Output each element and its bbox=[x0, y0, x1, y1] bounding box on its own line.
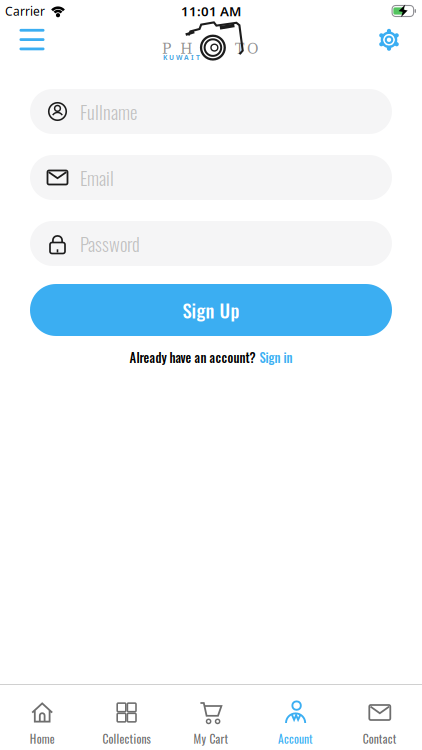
button[interactable]: Already have an account? bbox=[129, 348, 292, 367]
button[interactable]: Home bbox=[0, 701, 84, 747]
staticText: Sign Up bbox=[182, 296, 239, 324]
staticText: O bbox=[247, 41, 258, 57]
staticText: P bbox=[162, 41, 171, 57]
button[interactable]: My Cart bbox=[169, 701, 253, 747]
staticText: Already have an account? bbox=[129, 348, 255, 367]
staticText: H bbox=[180, 41, 192, 57]
staticText: Home bbox=[30, 730, 55, 747]
staticText: Contact bbox=[363, 730, 397, 747]
staticText: 11:01 AM bbox=[181, 2, 241, 20]
staticText: Sign in bbox=[259, 348, 292, 367]
staticText: Account bbox=[278, 730, 313, 747]
button[interactable]: Contact bbox=[338, 701, 422, 747]
staticText: Collections bbox=[103, 730, 151, 747]
staticText: Password bbox=[80, 230, 140, 257]
button[interactable]: Password bbox=[30, 221, 392, 266]
button[interactable]: Sign Up bbox=[30, 284, 392, 336]
button[interactable]: Menu bbox=[19, 29, 44, 50]
staticText: K U W A I T bbox=[163, 53, 200, 62]
button[interactable]: Account bbox=[253, 701, 338, 747]
staticText: Email bbox=[80, 164, 114, 191]
staticText: Carrier bbox=[5, 3, 45, 19]
staticText: T bbox=[235, 41, 244, 57]
button[interactable]: Collections bbox=[84, 701, 169, 747]
staticText: Fullname bbox=[80, 98, 137, 125]
button[interactable]: Fullname bbox=[30, 89, 392, 134]
button[interactable]: Settings bbox=[378, 29, 400, 51]
staticText: My Cart bbox=[193, 730, 228, 747]
button[interactable]: Email bbox=[30, 155, 392, 200]
